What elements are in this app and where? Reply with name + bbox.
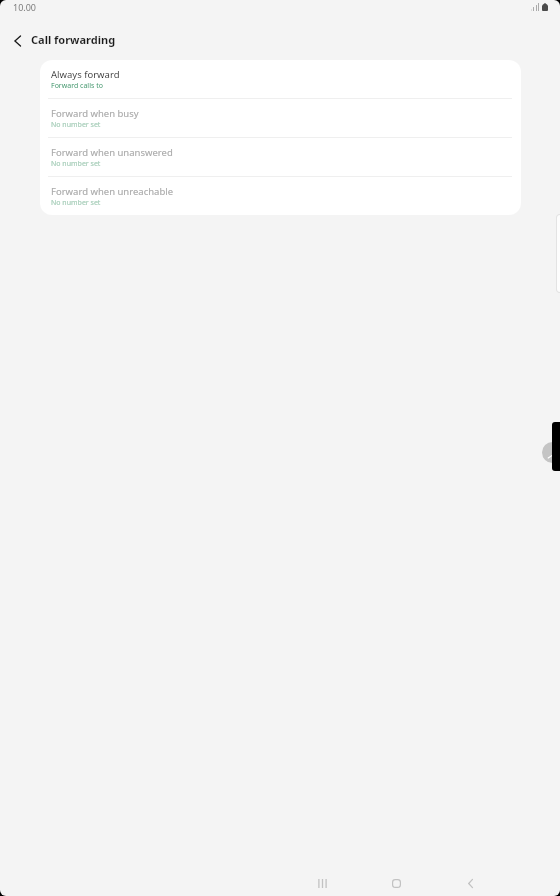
staticText: No number set xyxy=(51,159,101,169)
staticText: Forward when busy xyxy=(51,107,139,120)
button[interactable]: Edge panel xyxy=(542,442,560,463)
staticText: Always forward xyxy=(51,68,120,81)
button[interactable]: Back xyxy=(448,870,492,896)
button[interactable]: Forward when unreachable xyxy=(40,177,521,215)
button[interactable]: Recent apps xyxy=(300,870,344,896)
button[interactable]: Forward when unanswered xyxy=(40,138,521,176)
button[interactable]: Always forward xyxy=(40,60,521,98)
button[interactable]: Home xyxy=(374,870,418,896)
staticText: No number set xyxy=(51,120,101,130)
staticText: 10.00 xyxy=(13,1,37,13)
staticText: Forward when unanswered xyxy=(51,146,173,159)
button[interactable]: Back xyxy=(4,27,32,55)
staticText: Call forwarding xyxy=(31,32,116,47)
staticText: Forward calls to xyxy=(51,81,103,91)
staticText: No number set xyxy=(51,198,101,208)
staticText: Forward when unreachable xyxy=(51,185,174,198)
button[interactable]: Forward when busy xyxy=(40,99,521,137)
